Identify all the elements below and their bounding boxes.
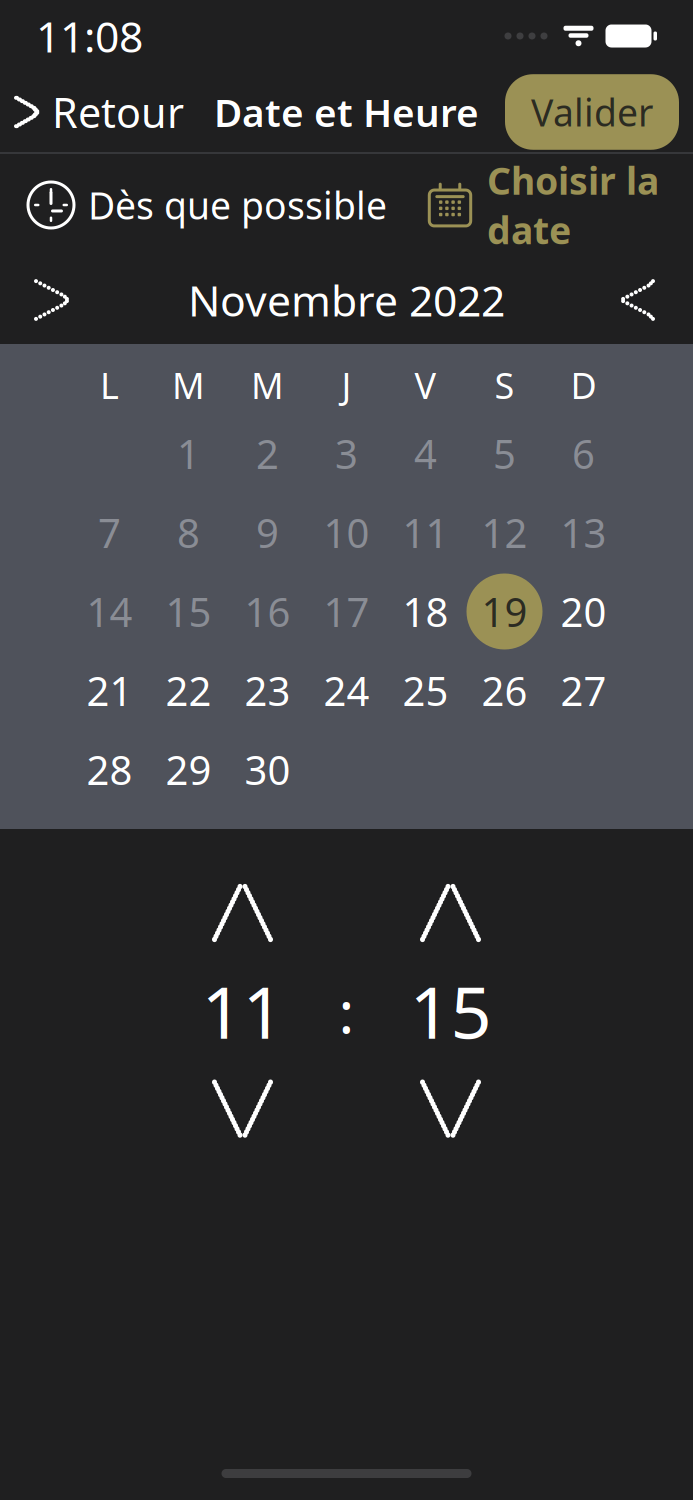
staticText: 27 (560, 664, 606, 717)
button[interactable]: Choisir la date (427, 143, 659, 267)
button[interactable]: 26 (465, 651, 544, 730)
staticText: 6 (572, 427, 595, 480)
staticText: 18 (402, 585, 448, 638)
button[interactable]: 1 (149, 414, 228, 493)
staticText: 14 (86, 585, 132, 638)
staticText: Date et Heure (214, 86, 479, 138)
button[interactable]: 16 (228, 572, 307, 651)
staticText: 9 (256, 506, 279, 559)
staticText: : (338, 972, 354, 1050)
button[interactable]: Dès que possible (28, 168, 387, 242)
button[interactable]: Retour (0, 73, 200, 151)
staticText: Novembre 2022 (188, 272, 505, 328)
button[interactable]: 4 (386, 414, 465, 493)
button[interactable]: 6 (544, 414, 623, 493)
staticText: 21 (86, 664, 132, 717)
button[interactable]: 24 (307, 651, 386, 730)
staticText: 11 (201, 963, 283, 1059)
button[interactable]: 21 (70, 651, 149, 730)
button[interactable]: 18 (386, 572, 465, 651)
staticText: 11 (402, 506, 448, 559)
button[interactable]: 20 (544, 572, 623, 651)
button[interactable]: 27 (544, 651, 623, 730)
button[interactable]: 13 (544, 493, 623, 572)
staticText: D (570, 361, 596, 409)
staticText: Valider (531, 87, 653, 137)
staticText: M (251, 361, 284, 409)
staticText: 29 (165, 743, 211, 796)
button[interactable]: 28 (70, 730, 149, 809)
staticText: M (172, 361, 205, 409)
staticText: 15 (165, 585, 211, 638)
staticText: 15 (409, 963, 491, 1059)
staticText: 22 (165, 664, 211, 717)
button[interactable]: Diminuer les minutes (402, 1073, 498, 1145)
button[interactable]: 22 (149, 651, 228, 730)
button[interactable]: 14 (70, 572, 149, 651)
staticText: V (414, 361, 436, 409)
staticText: 24 (323, 664, 369, 717)
button[interactable]: 29 (149, 730, 228, 809)
button[interactable]: 30 (228, 730, 307, 809)
button[interactable]: 9 (228, 493, 307, 572)
staticText: 2 (256, 427, 279, 480)
staticText: 1 (177, 427, 200, 480)
button[interactable]: 11 (386, 493, 465, 572)
staticText: 25 (402, 664, 448, 717)
button[interactable]: 19 (465, 572, 544, 651)
button[interactable]: 17 (307, 572, 386, 651)
staticText: 19 (481, 585, 527, 638)
staticText: 8 (177, 506, 200, 559)
staticText: 4 (414, 427, 437, 480)
button[interactable]: 7 (70, 493, 149, 572)
staticText: 3 (335, 427, 358, 480)
staticText: 13 (560, 506, 606, 559)
staticText: 11:08 (36, 8, 143, 64)
staticText: 10 (323, 506, 369, 559)
button[interactable]: 10 (307, 493, 386, 572)
staticText: Retour (52, 85, 184, 139)
button[interactable]: 23 (228, 651, 307, 730)
staticText: Choisir la date (487, 155, 659, 255)
button[interactable]: 15 (149, 572, 228, 651)
staticText: Dès que possible (88, 180, 387, 230)
staticText: 20 (560, 585, 606, 638)
staticText: 28 (86, 743, 132, 796)
staticText: 30 (244, 743, 290, 796)
button[interactable]: 25 (386, 651, 465, 730)
button[interactable]: 12 (465, 493, 544, 572)
staticText: 5 (493, 427, 516, 480)
staticText: S (494, 361, 514, 409)
staticText: 16 (244, 585, 290, 638)
button[interactable]: 5 (465, 414, 544, 493)
button[interactable]: Diminuer les heures (194, 1073, 290, 1145)
staticText: 26 (481, 664, 527, 717)
button[interactable]: 3 (307, 414, 386, 493)
staticText: 17 (323, 585, 369, 638)
staticText: 7 (98, 506, 121, 559)
button[interactable]: 8 (149, 493, 228, 572)
button[interactable]: Augmenter les heures (194, 877, 290, 949)
button[interactable]: Augmenter les minutes (402, 877, 498, 949)
staticText: J (341, 361, 351, 409)
staticText: L (100, 361, 119, 409)
button[interactable]: Mois précédent (14, 264, 94, 336)
staticText: 12 (481, 506, 527, 559)
button[interactable]: Valider (505, 74, 679, 150)
button[interactable]: 2 (228, 414, 307, 493)
staticText: 23 (244, 664, 290, 717)
button[interactable]: Mois suivant (599, 264, 679, 336)
